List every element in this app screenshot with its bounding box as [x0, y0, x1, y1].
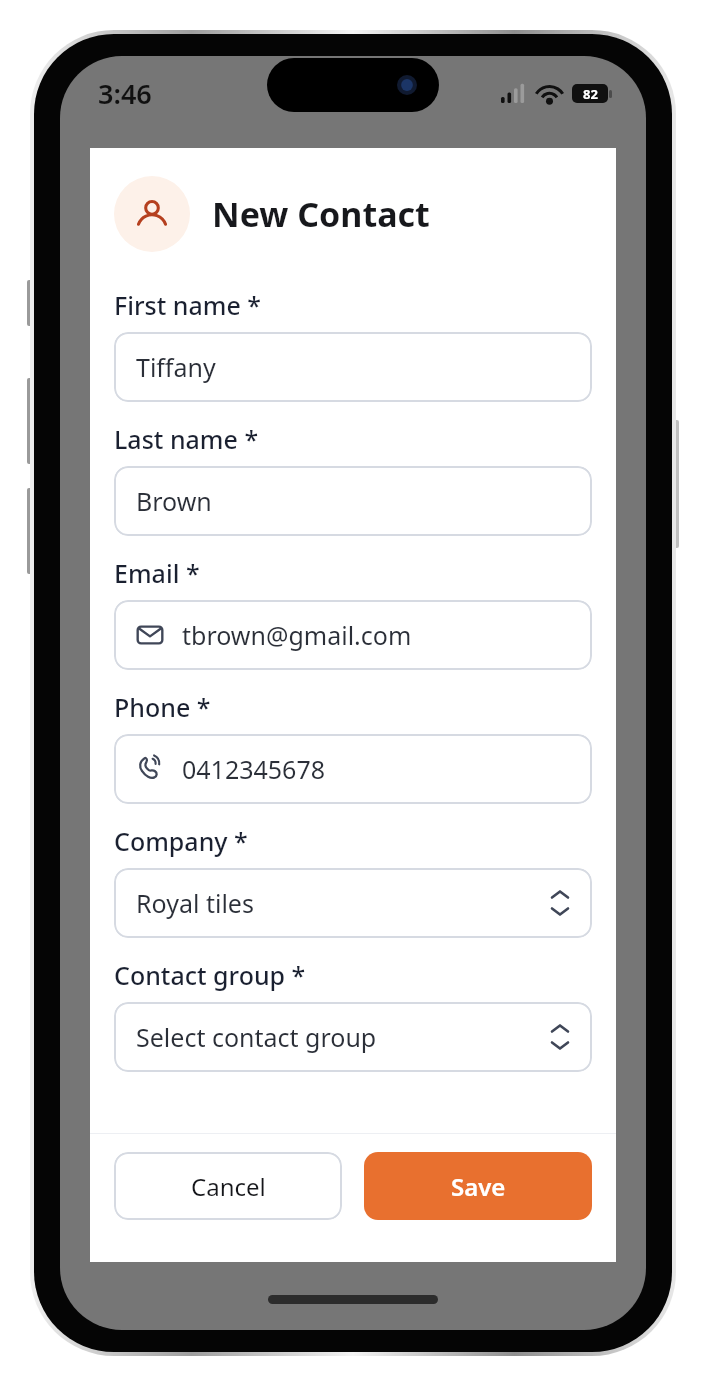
staticText: Last name *: [114, 422, 259, 456]
staticText: Select contact group: [136, 1020, 550, 1054]
button[interactable]: Save: [364, 1152, 592, 1220]
other: Open dropdown: [550, 1020, 570, 1054]
other: Open dropdown: [550, 886, 570, 920]
button[interactable]: Cancel: [114, 1152, 342, 1220]
staticText: Cancel: [191, 1170, 266, 1203]
staticText: New Contact: [212, 191, 430, 237]
button[interactable]: Select contact group: [114, 1002, 592, 1072]
button[interactable]: Royal tiles: [114, 868, 592, 938]
staticText: 82: [583, 85, 598, 103]
staticText: Company *: [114, 824, 248, 858]
staticText: Phone *: [114, 690, 211, 724]
button[interactable]: 0412345678: [114, 734, 592, 804]
staticText: Brown: [136, 484, 212, 518]
button[interactable]: Tiffany: [114, 332, 592, 402]
staticText: Save: [451, 1170, 506, 1203]
staticText: Royal tiles: [136, 886, 550, 920]
staticText: First name *: [114, 288, 261, 322]
button[interactable]: Brown: [114, 466, 592, 536]
staticText: Contact group *: [114, 958, 306, 992]
staticText: Email *: [114, 556, 200, 590]
staticText: tbrown@gmail.com: [182, 618, 412, 652]
staticText: 3:46: [98, 75, 152, 112]
staticText: 0412345678: [182, 752, 326, 786]
staticText: Tiffany: [136, 350, 216, 384]
button[interactable]: tbrown@gmail.com: [114, 600, 592, 670]
